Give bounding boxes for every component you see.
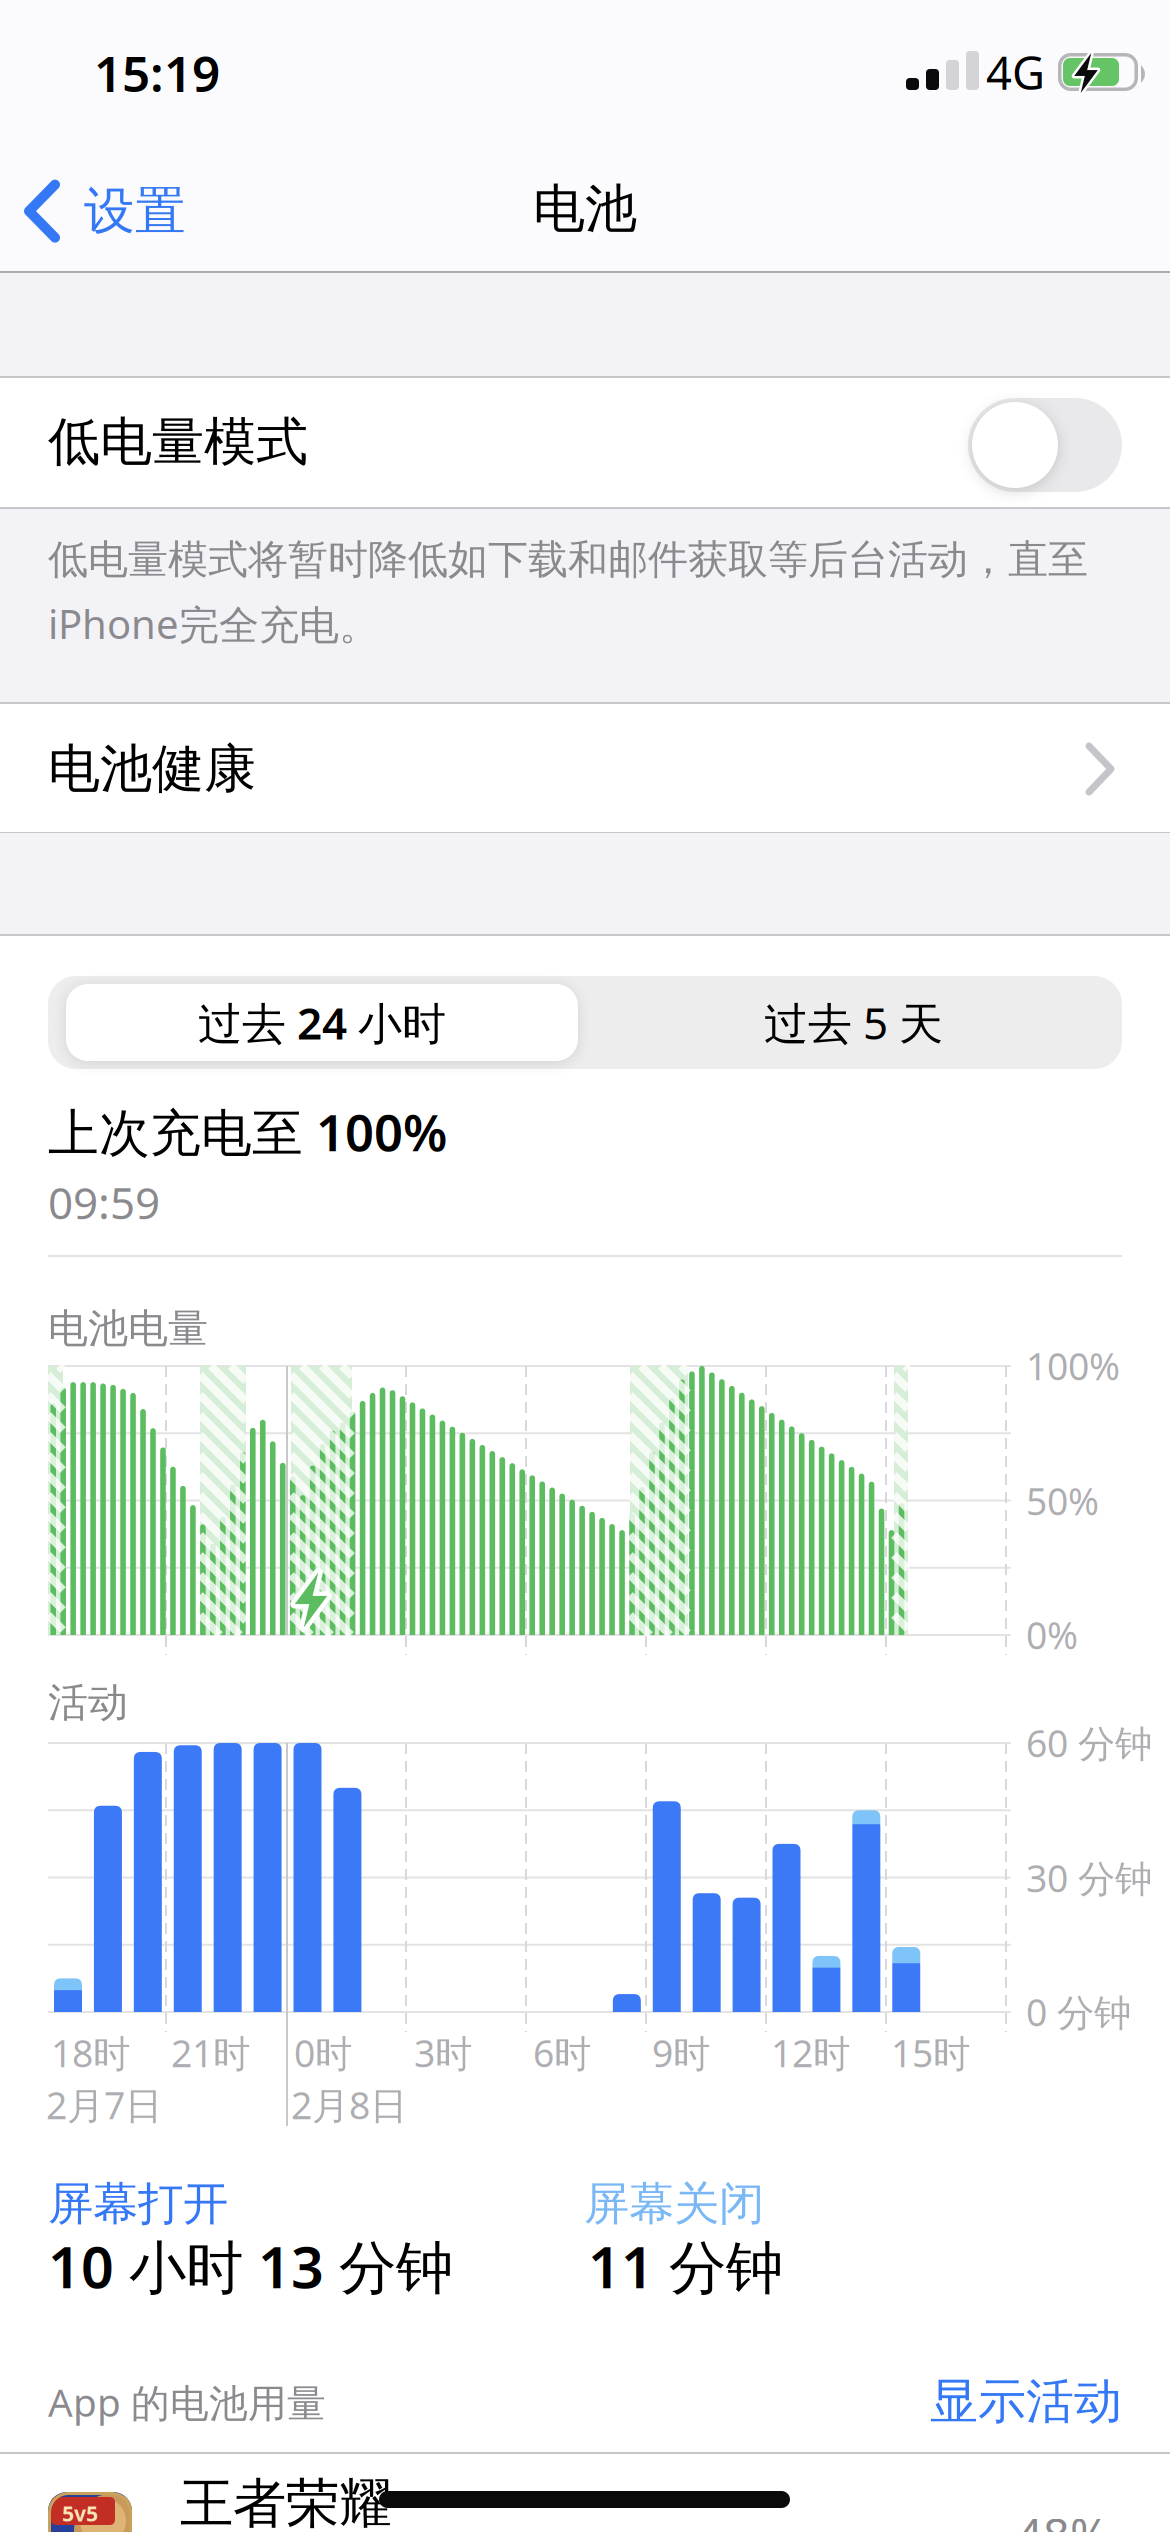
staticText: 电池健康 xyxy=(48,737,256,801)
staticText: 5v5 xyxy=(62,2499,98,2527)
staticText: 0时 xyxy=(294,2028,352,2078)
staticText: 15时 xyxy=(891,2028,970,2078)
button[interactable] xyxy=(66,984,578,1061)
staticText: 4G xyxy=(986,42,1045,102)
staticText: 48% xyxy=(1016,2504,1109,2532)
staticText: 21时 xyxy=(171,2028,250,2078)
staticText: 过去 5 天 xyxy=(764,993,943,1052)
staticText: 0% xyxy=(1026,1610,1078,1660)
staticText: 50% xyxy=(1026,1476,1099,1526)
staticText: 屏幕关闭 xyxy=(584,2176,764,2232)
button[interactable]: 过去 24 小时 xyxy=(66,976,578,1069)
staticText: 60 分钟 xyxy=(1026,1718,1152,1768)
staticText: 09:59 xyxy=(48,1173,160,1231)
staticText: 电池 xyxy=(533,177,637,241)
button[interactable]: 过去 5 天 xyxy=(585,976,1122,1069)
staticText: 30 分钟 xyxy=(1026,1853,1152,1903)
staticText: 电池电量 xyxy=(48,1304,208,1353)
staticText: 15:19 xyxy=(94,40,220,105)
staticText: 12时 xyxy=(771,2028,850,2078)
staticText: 过去 24 小时 xyxy=(198,993,446,1052)
button[interactable] xyxy=(968,398,1122,492)
button[interactable]: 设置 xyxy=(26,180,186,242)
staticText: 0 分钟 xyxy=(1026,1987,1131,2037)
staticText: 王者荣耀 xyxy=(180,2471,392,2532)
staticText: 显示活动 xyxy=(930,2372,1122,2431)
button[interactable]: 电池健康 xyxy=(0,0,1170,2532)
staticText: 屏幕打开 xyxy=(48,2176,228,2232)
staticText: 设置 xyxy=(84,180,186,242)
staticText: 6时 xyxy=(533,2028,591,2078)
button[interactable]: 5v5 xyxy=(0,0,411,84)
staticText: 低电量模式 xyxy=(48,410,308,474)
staticText: 低电量模式将暂时降低如下载和邮件获取等后台活动，直至 xyxy=(48,535,1088,584)
staticText: 11 分钟 xyxy=(588,2228,783,2304)
staticText: 18时 xyxy=(51,2028,130,2078)
staticText: 2月8日 xyxy=(291,2080,407,2130)
button[interactable]: 显示活动 xyxy=(930,2372,1122,2431)
staticText: 10 小时 13 分钟 xyxy=(48,2228,453,2304)
staticText: iPhone完全充电。 xyxy=(48,597,379,650)
staticText: 9时 xyxy=(652,2028,710,2078)
staticText: 3时 xyxy=(414,2028,472,2078)
staticText: 2月7日 xyxy=(46,2080,162,2130)
staticText: App 的电池用量 xyxy=(48,2376,326,2427)
staticText: 活动 xyxy=(48,1678,128,1727)
staticText: 上次充电至 100% xyxy=(48,1098,447,1165)
staticText: 100% xyxy=(1026,1341,1120,1391)
